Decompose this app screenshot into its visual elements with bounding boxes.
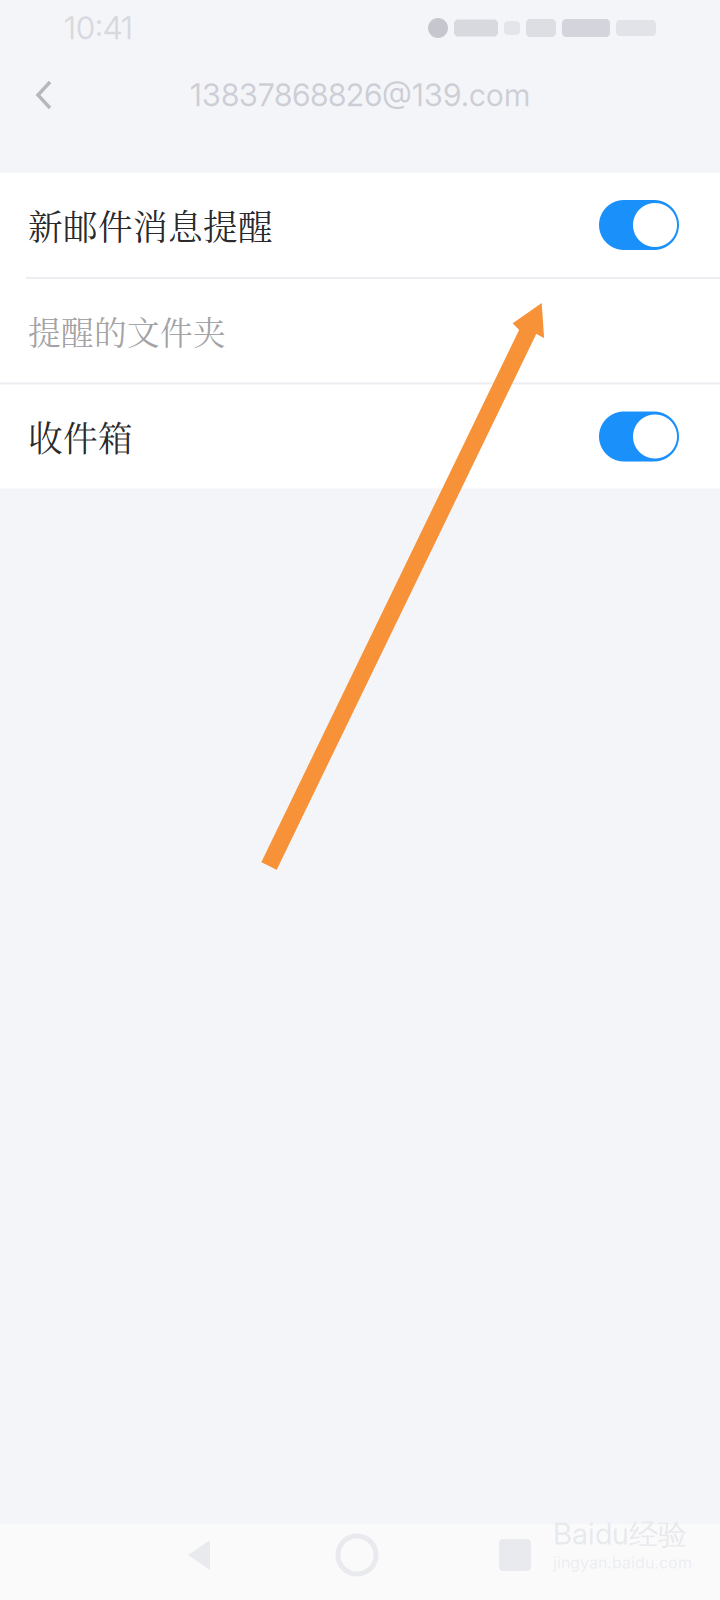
staticText: 收件箱: [28, 412, 133, 461]
staticText: jingyan.baidu.com: [553, 1553, 692, 1572]
button[interactable]: 新邮件消息提醒: [0, 173, 720, 277]
button[interactable]: Back: [0, 56, 88, 134]
staticText: Baidu经验: [553, 1516, 687, 1553]
staticText: 13837868826@139.com: [190, 76, 530, 113]
staticText: 10:41: [64, 9, 133, 46]
button[interactable]: Recents: [436, 1517, 594, 1593]
staticText: 提醒的文件夹: [28, 307, 226, 354]
staticText: 新邮件消息提醒: [28, 200, 273, 250]
button[interactable]: Home: [278, 1517, 436, 1593]
button[interactable]: 收件箱: [0, 384, 720, 488]
button[interactable]: Back: [120, 1517, 278, 1593]
